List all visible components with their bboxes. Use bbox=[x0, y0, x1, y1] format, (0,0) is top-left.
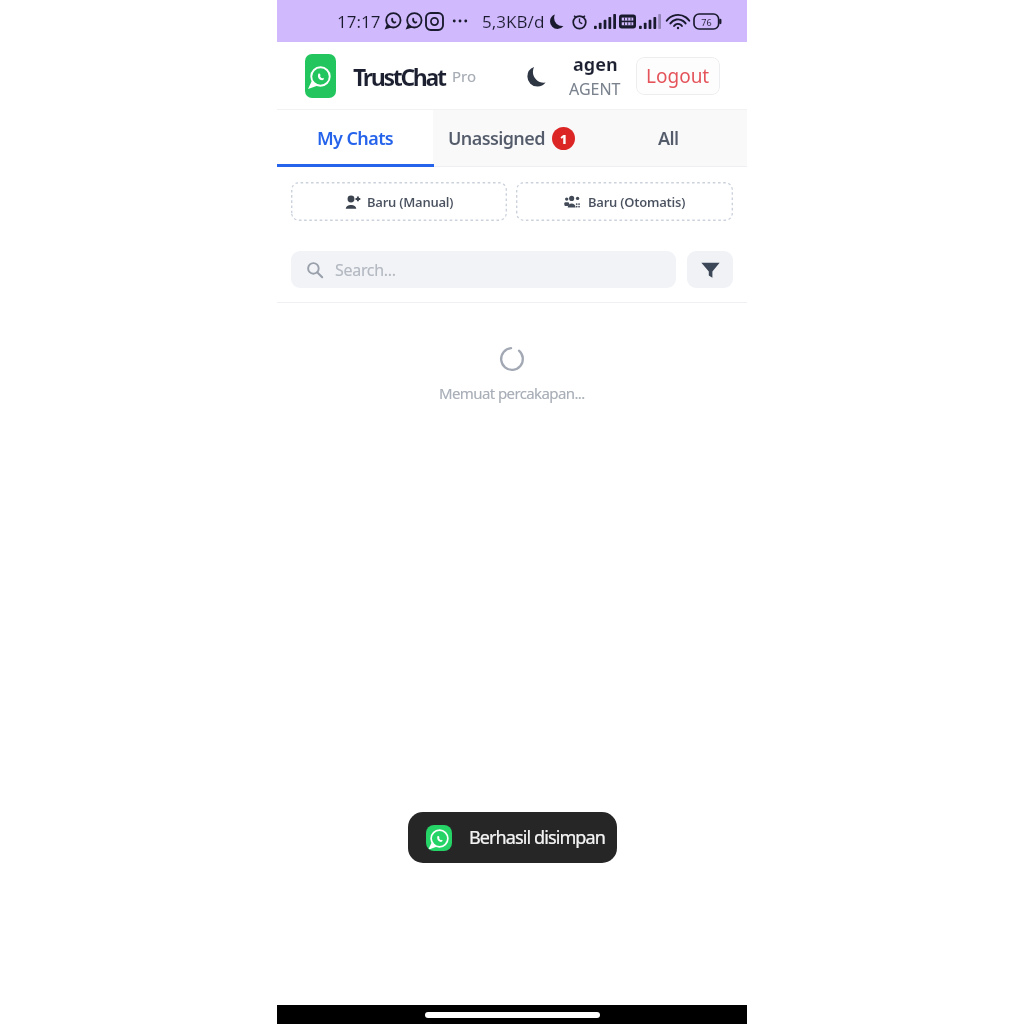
staticText: My Chats bbox=[317, 126, 394, 151]
staticText: Logout bbox=[646, 63, 710, 89]
staticText: Pro bbox=[452, 66, 477, 86]
button[interactable]: Baru (Otomatis) bbox=[516, 182, 733, 221]
staticText: Berhasil disimpan bbox=[469, 825, 605, 850]
staticText: All bbox=[658, 126, 679, 151]
button[interactable]: Toggle dark mode bbox=[522, 61, 552, 91]
staticText: TrustChat bbox=[353, 61, 445, 92]
button[interactable]: Unassigned bbox=[433, 110, 590, 167]
button[interactable]: Logout bbox=[636, 57, 720, 95]
staticText: 1 bbox=[560, 130, 568, 148]
button[interactable]: Baru (Manual) bbox=[291, 182, 507, 221]
button[interactable]: All bbox=[590, 110, 747, 167]
staticText: Unassigned bbox=[448, 126, 545, 151]
staticText: 5,3KB/d bbox=[482, 10, 545, 33]
staticText: 17:17 bbox=[337, 10, 381, 33]
button[interactable]: Search... bbox=[291, 251, 676, 288]
button[interactable]: Filter bbox=[687, 251, 733, 288]
staticText: Baru (Manual) bbox=[367, 193, 454, 211]
staticText: 76 bbox=[701, 16, 712, 28]
staticText: agen bbox=[573, 52, 618, 77]
staticText: AGENT bbox=[569, 78, 621, 100]
button[interactable]: My Chats bbox=[277, 110, 433, 167]
staticText: Baru (Otomatis) bbox=[588, 193, 686, 211]
button[interactable]: Berhasil disimpan bbox=[408, 812, 617, 863]
staticText: Memuat percakapan... bbox=[439, 383, 585, 403]
staticText: Search... bbox=[335, 259, 396, 281]
